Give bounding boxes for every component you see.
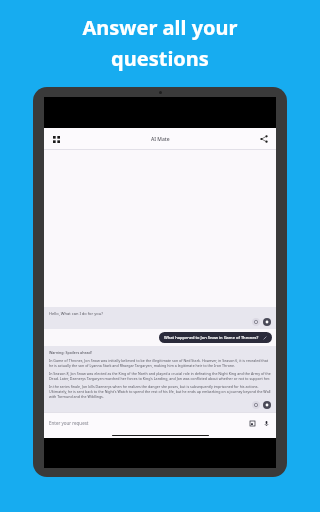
staticText: questions: [111, 45, 209, 72]
button[interactable]: Voice input: [261, 418, 271, 428]
staticText: Answer all your: [82, 14, 238, 41]
button[interactable]: Attach image: [247, 418, 257, 428]
staticText: What happened to Jon Snow in Game of Thr…: [164, 335, 259, 340]
button[interactable]: Menu: [48, 131, 64, 147]
staticText: Warning: Spoilers ahead!: [49, 350, 92, 355]
button[interactable]: Speak: [263, 318, 271, 326]
button[interactable]: Copy: [252, 401, 260, 409]
button[interactable]: Share: [256, 131, 272, 147]
button[interactable]: What happened to Jon Snow in Game of Thr…: [159, 332, 272, 343]
staticText: In Season 8, Jon Snow was elected as the…: [49, 371, 271, 381]
button[interactable]: Speak: [263, 401, 271, 409]
staticText: Hello, What can I do for you?: [49, 311, 103, 316]
staticText: In Game of Thrones, Jon Snow was initial…: [49, 358, 271, 368]
staticText: AI Mate: [151, 136, 170, 143]
button[interactable]: Copy: [252, 318, 260, 326]
staticText: In the series finale, Jon kills Daenerys…: [49, 384, 271, 399]
staticText: Enter your request: [49, 420, 247, 426]
